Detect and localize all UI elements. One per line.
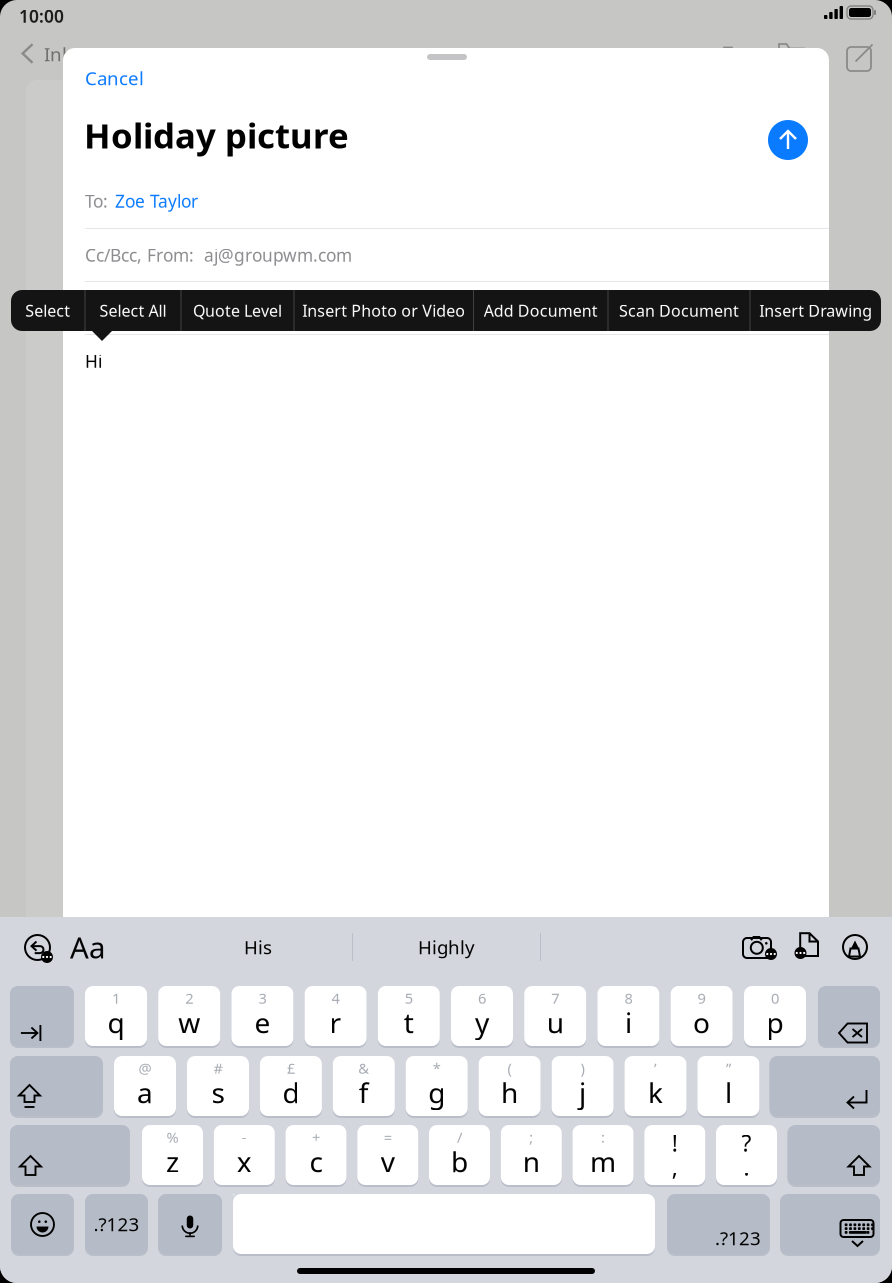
button[interactable]: ; — [501, 1125, 562, 1187]
staticText: + — [312, 1127, 320, 1147]
staticText: u — [547, 1004, 564, 1041]
button[interactable]: 5 — [378, 986, 440, 1048]
button[interactable]: Highly — [353, 929, 540, 965]
staticText: ! — [672, 1128, 678, 1158]
button[interactable]: £ — [260, 1056, 322, 1118]
staticText: Scan Document — [619, 300, 739, 321]
staticText: y — [475, 1004, 489, 1041]
staticText: ” — [726, 1058, 731, 1078]
button[interactable]: Insert Photo or Video — [294, 290, 473, 331]
button[interactable]: Numbers — [667, 1194, 770, 1256]
button[interactable]: ? — [716, 1125, 777, 1187]
button[interactable]: - — [214, 1125, 275, 1187]
button[interactable]: @ — [114, 1056, 176, 1118]
button[interactable]: 4 — [305, 986, 367, 1048]
staticText: Select — [25, 300, 70, 321]
staticText: 4 — [332, 988, 340, 1008]
button[interactable]: Undo — [23, 933, 52, 962]
button[interactable]: / — [429, 1125, 490, 1187]
staticText: 9 — [698, 988, 706, 1008]
staticText: . — [743, 1152, 749, 1182]
button[interactable]: Dismiss keyboard — [780, 1194, 880, 1256]
button[interactable]: = — [357, 1125, 418, 1187]
button[interactable]: + — [285, 1125, 346, 1187]
staticText: v — [381, 1143, 395, 1180]
staticText: l — [725, 1074, 732, 1111]
button[interactable]: space — [233, 1194, 655, 1256]
button[interactable]: Quote Level — [181, 290, 293, 331]
button[interactable]: ) — [552, 1056, 614, 1118]
button[interactable]: Numbers — [85, 1194, 148, 1256]
staticText: m — [590, 1143, 616, 1180]
staticText: 6 — [478, 988, 486, 1008]
staticText: @ — [138, 1058, 151, 1078]
staticText: - — [242, 1127, 247, 1147]
staticText: ; — [529, 1127, 533, 1147]
button[interactable]: 6 — [451, 986, 513, 1048]
button[interactable]: Shift — [10, 1125, 130, 1187]
button[interactable]: : — [572, 1125, 633, 1187]
staticText: Insert Photo or Video — [302, 300, 465, 321]
staticText: 3 — [258, 988, 266, 1008]
button[interactable]: * — [406, 1056, 468, 1118]
button[interactable]: Cancel — [71, 64, 191, 92]
staticText: Add Document — [484, 300, 598, 321]
button[interactable]: % — [142, 1125, 203, 1187]
staticText: z — [166, 1143, 179, 1180]
button[interactable]: Shift — [787, 1125, 880, 1187]
staticText: h — [501, 1074, 518, 1111]
button[interactable]: Markup — [843, 935, 867, 959]
button[interactable]: 8 — [597, 986, 659, 1048]
staticText: .?123 — [715, 1226, 761, 1250]
button[interactable]: ! — [644, 1125, 705, 1187]
button[interactable]: Dictation — [158, 1194, 222, 1256]
button[interactable]: Insert photo — [742, 934, 772, 958]
staticText: ( — [508, 1058, 512, 1078]
button[interactable]: Return — [769, 1056, 880, 1118]
button[interactable]: # — [187, 1056, 249, 1118]
staticText: .?123 — [93, 1212, 139, 1236]
button[interactable]: Select All — [85, 290, 180, 331]
staticText: k — [648, 1074, 663, 1111]
staticText: Cc/Bcc, From: aj@groupwm.com — [85, 243, 352, 266]
staticText: 10:00 — [19, 4, 64, 27]
button[interactable]: ” — [697, 1056, 759, 1118]
button[interactable]: 3 — [231, 986, 293, 1048]
button[interactable]: Emoji — [11, 1194, 74, 1256]
button[interactable]: 1 — [85, 986, 147, 1048]
button[interactable]: Insert document — [799, 932, 819, 957]
button[interactable]: Tab — [10, 986, 74, 1048]
button[interactable]: Zoe Taylor — [115, 189, 198, 212]
staticText: Zoe Taylor — [115, 189, 198, 212]
button[interactable]: ( — [479, 1056, 541, 1118]
button[interactable]: Send — [760, 112, 808, 160]
staticText: 1 — [112, 988, 120, 1008]
staticText: ) — [581, 1058, 585, 1078]
staticText: Insert Drawing — [759, 300, 872, 321]
staticText: 0 — [771, 988, 779, 1008]
staticText: c — [309, 1143, 322, 1180]
button[interactable]: Add Document — [474, 290, 607, 331]
button[interactable]: & — [333, 1056, 395, 1118]
button[interactable]: Scan Document — [608, 290, 749, 331]
button[interactable]: Backspace — [818, 986, 880, 1048]
button[interactable]: 0 — [744, 986, 806, 1048]
staticText: & — [358, 1058, 369, 1078]
button[interactable]: Caps lock — [10, 1056, 103, 1118]
button[interactable]: Delete — [714, 40, 742, 68]
button[interactable]: Aa — [70, 931, 110, 963]
button[interactable]: Move to folder — [778, 42, 805, 64]
button[interactable]: 7 — [524, 986, 586, 1048]
button[interactable]: ’ — [624, 1056, 686, 1118]
staticText: 8 — [624, 988, 632, 1008]
staticText: # — [213, 1058, 222, 1078]
button[interactable]: Compose — [845, 40, 873, 70]
button[interactable]: Select — [11, 290, 84, 331]
button[interactable]: His — [163, 929, 353, 965]
button[interactable]: 2 — [158, 986, 220, 1048]
button[interactable]: 9 — [671, 986, 733, 1048]
staticText: i — [625, 1004, 632, 1041]
button[interactable]: Insert Drawing — [750, 290, 881, 331]
staticText: a — [137, 1074, 153, 1111]
staticText: ’ — [654, 1058, 657, 1078]
